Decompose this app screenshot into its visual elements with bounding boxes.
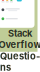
staticText: Overflow bbox=[0, 39, 40, 50]
staticText: Questions bbox=[0, 50, 40, 72]
staticText: Stack bbox=[8, 28, 32, 39]
